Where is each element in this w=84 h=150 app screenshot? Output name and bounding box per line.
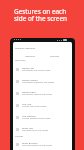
button[interactable]: Swipe Middle [13, 75, 72, 87]
staticText: Gestures on each side of the screen [14, 7, 67, 23]
staticText: Settings [50, 54, 60, 57]
staticText: Swipe Right [22, 90, 36, 93]
staticText: The bottom left of the screen [22, 69, 51, 72]
staticText: GESTURES [15, 59, 26, 62]
staticText: Swipe Middle [22, 78, 38, 81]
button[interactable]: Settings [47, 53, 63, 58]
staticText: Right Top [22, 126, 34, 129]
button[interactable]: Right Bottom [13, 138, 72, 150]
staticText: Right Bottom [22, 141, 38, 144]
staticText: The right bottom of the screen [22, 144, 53, 147]
staticText: Left Bottom [22, 114, 36, 117]
button[interactable]: Left Bottom [13, 111, 72, 123]
button[interactable]: Right Top [13, 123, 72, 135]
button[interactable]: Gestures [22, 53, 38, 58]
button[interactable]: Left Top [13, 99, 72, 111]
staticText: OTHERS [15, 135, 24, 138]
staticText: OnePlus Gestures [15, 46, 36, 49]
staticText: The left bottom of the screen [22, 117, 51, 120]
staticText: Gestures [25, 54, 36, 57]
button[interactable]: Swipe Right [13, 87, 72, 99]
staticText: The bottom middle of the screen [22, 81, 55, 84]
staticText: The left top of the screen [22, 105, 47, 108]
staticText: Swipe Left [22, 66, 35, 69]
staticText: The right top of the screen [22, 129, 49, 132]
button[interactable]: Swipe Left [13, 63, 72, 75]
staticText: The bottom right of the screen [22, 93, 53, 96]
button[interactable]: OnePlus Gestures [13, 42, 72, 52]
staticText: Left Top [22, 102, 32, 105]
